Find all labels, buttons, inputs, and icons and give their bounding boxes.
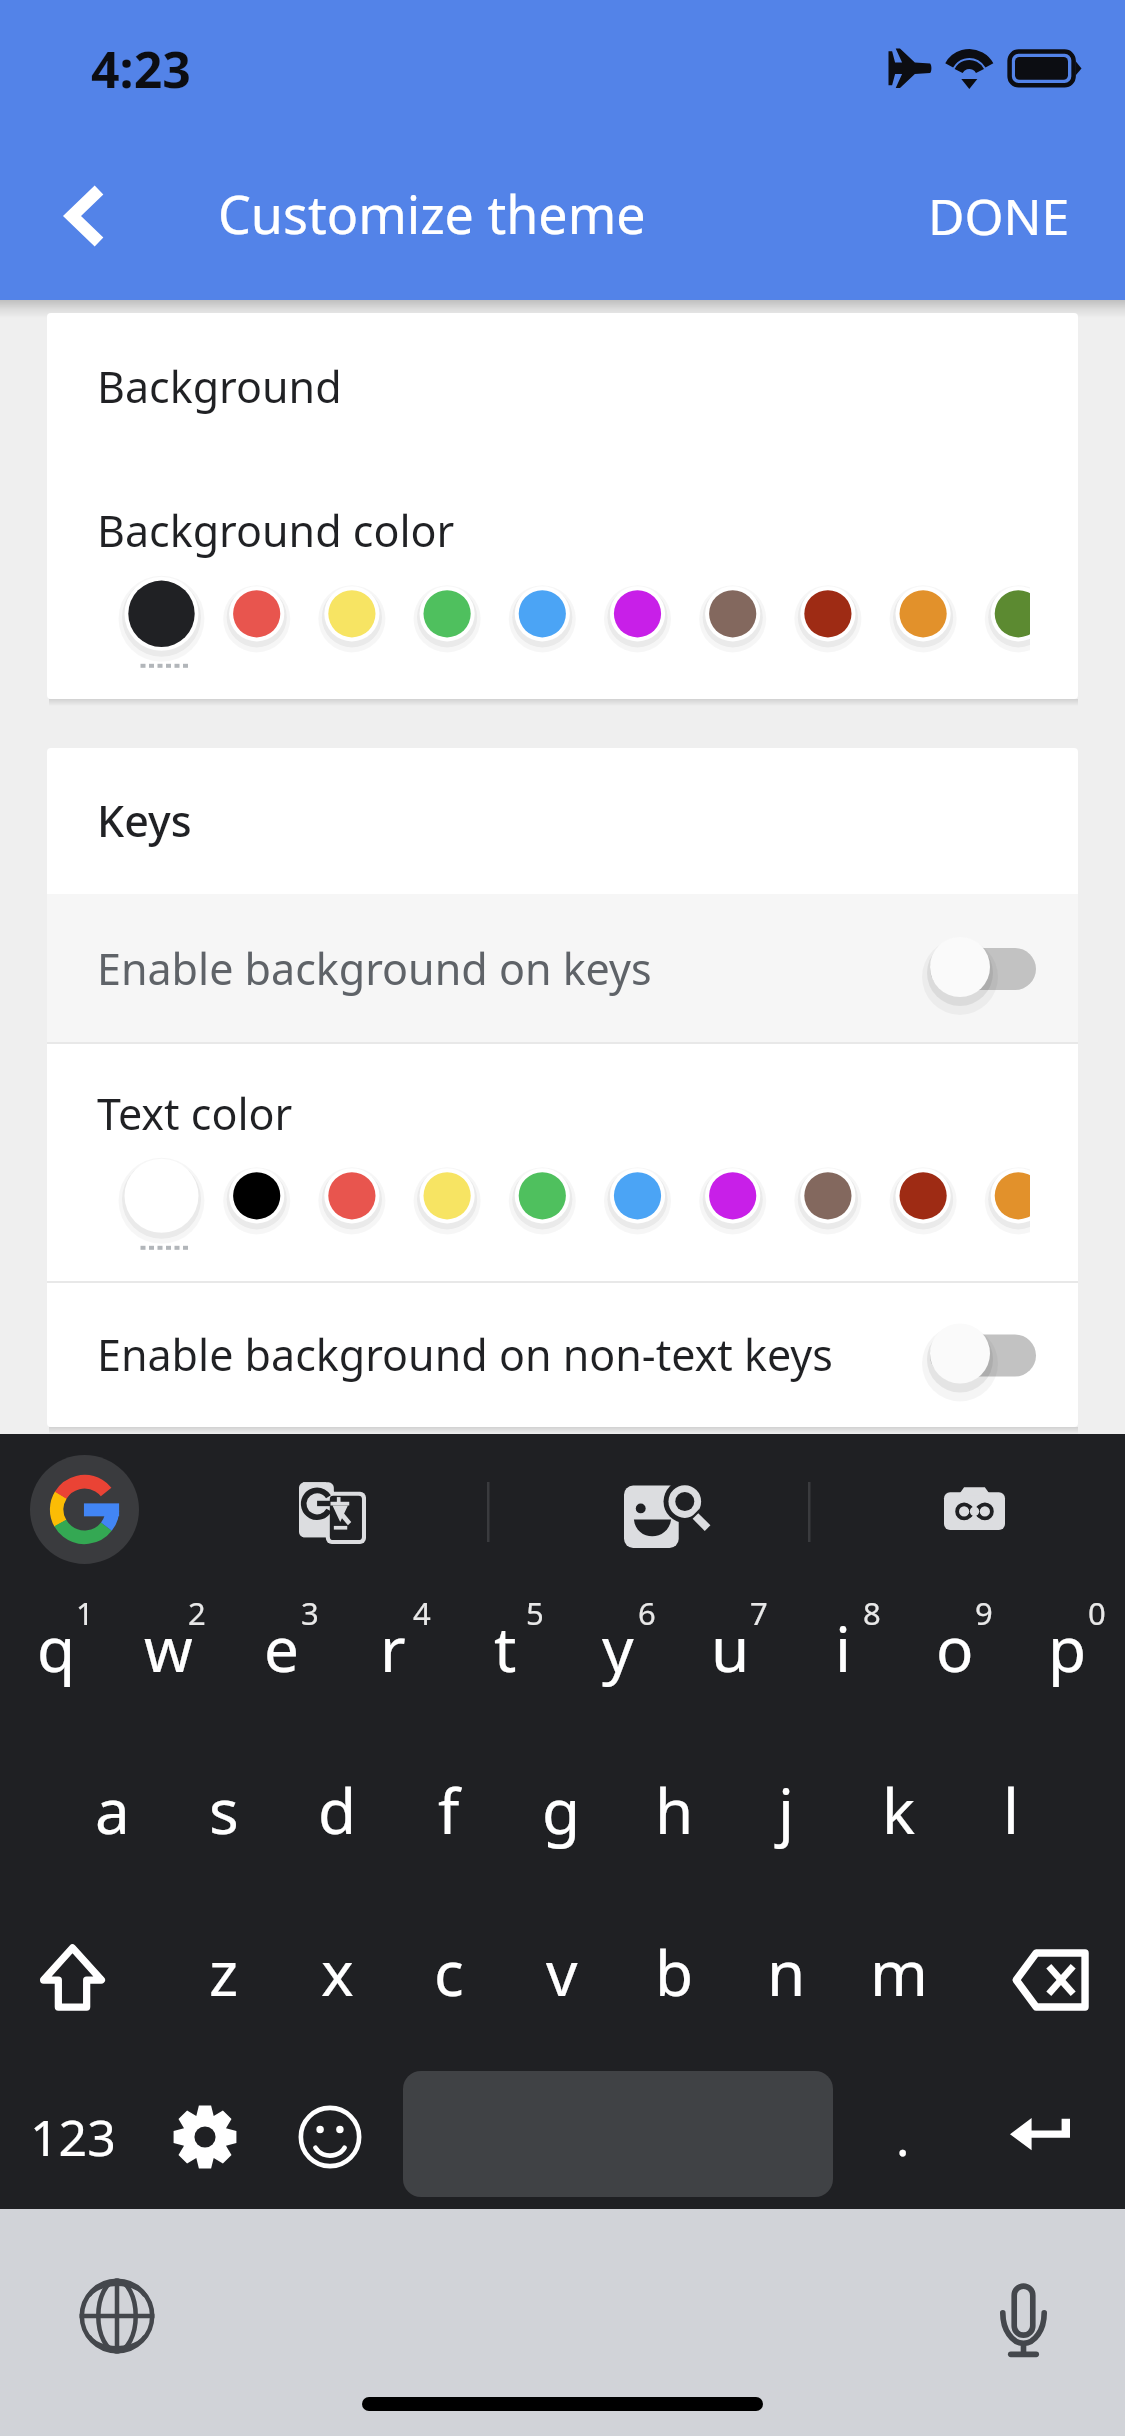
staticText: y	[602, 1606, 634, 1690]
staticText: 0	[1088, 1592, 1106, 1632]
button[interactable]: 123	[3, 2079, 143, 2194]
staticText: Background	[97, 357, 342, 416]
button[interactable]: Shift	[6, 1900, 138, 2063]
button[interactable]: a	[56, 1728, 168, 1891]
staticText: 3	[301, 1592, 319, 1632]
button[interactable]: b	[618, 1890, 730, 2053]
staticText: s	[209, 1768, 239, 1852]
staticText: 5	[526, 1592, 544, 1632]
staticText: j	[778, 1768, 794, 1852]
staticText: u	[711, 1606, 750, 1690]
button[interactable]: u	[674, 1566, 786, 1729]
button[interactable]: k	[843, 1728, 955, 1891]
button[interactable]: o	[899, 1566, 1011, 1729]
button[interactable]: Emoji	[275, 2079, 385, 2194]
staticText: i	[835, 1606, 851, 1690]
staticText: z	[209, 1930, 239, 2014]
staticText: p	[1048, 1606, 1087, 1690]
staticText: 2	[188, 1592, 206, 1632]
button[interactable]: w	[112, 1566, 224, 1729]
button[interactable]: y	[562, 1566, 674, 1729]
staticText: Enable background on keys	[97, 939, 928, 998]
button[interactable]: f	[393, 1728, 505, 1891]
button[interactable]: p	[1011, 1566, 1123, 1729]
staticText: h	[655, 1768, 694, 1852]
button[interactable]: n	[730, 1890, 842, 2053]
button[interactable]: i	[787, 1566, 899, 1729]
staticText: x	[321, 1930, 354, 2014]
staticText: w	[144, 1606, 193, 1690]
staticText: 4:23	[91, 35, 191, 103]
button[interactable]: GIF	[944, 1480, 1005, 1541]
button[interactable]: Translate	[299, 1477, 366, 1544]
button[interactable]: Voice input	[999, 2281, 1048, 2357]
button[interactable]: l	[955, 1728, 1067, 1891]
staticText: 123	[30, 2103, 116, 2171]
staticText: Customize theme	[218, 178, 646, 249]
button[interactable]: x	[281, 1890, 393, 2053]
button[interactable]: Sticker search	[624, 1478, 700, 1554]
button[interactable]: e	[225, 1566, 337, 1729]
staticText: 8	[863, 1592, 881, 1632]
button[interactable]: s	[168, 1728, 280, 1891]
button[interactable]: Settings	[150, 2079, 260, 2194]
button[interactable]: g	[505, 1728, 617, 1891]
staticText: 1	[76, 1592, 94, 1632]
staticText: 4	[413, 1592, 431, 1632]
staticText: f	[438, 1768, 460, 1852]
button[interactable]: Google search	[30, 1455, 139, 1564]
staticText: l	[1003, 1768, 1019, 1852]
button[interactable]: r	[337, 1566, 449, 1729]
button[interactable]: j	[730, 1728, 842, 1891]
staticText: d	[318, 1768, 357, 1852]
button[interactable]: c	[393, 1890, 505, 2053]
staticText: .	[896, 2103, 910, 2171]
button[interactable]: z	[168, 1890, 280, 2053]
staticText: o	[936, 1606, 974, 1690]
button[interactable]: q	[0, 1566, 112, 1729]
staticText: r	[380, 1606, 406, 1690]
staticText: b	[655, 1930, 694, 2014]
staticText: v	[546, 1930, 578, 2014]
button[interactable]: t	[449, 1566, 561, 1729]
button[interactable]: DONE	[900, 160, 1095, 270]
staticText: 6	[638, 1592, 656, 1632]
staticText: k	[882, 1768, 916, 1852]
button[interactable]: .	[850, 2079, 955, 2194]
button[interactable]: v	[506, 1890, 618, 2053]
staticText: q	[37, 1606, 76, 1690]
staticText: 7	[750, 1592, 768, 1632]
button[interactable]: Backspace	[985, 1900, 1117, 2063]
button[interactable]: Back	[16, 155, 136, 275]
staticText: g	[542, 1768, 581, 1852]
button[interactable]: Enter	[975, 2079, 1105, 2194]
staticText: Text color	[97, 1084, 293, 1143]
button[interactable]: Enable background on keys	[47, 894, 1078, 1042]
button[interactable]: h	[618, 1728, 730, 1891]
staticText: DONE	[928, 182, 1070, 250]
button[interactable]: Change keyboard language	[78, 2277, 156, 2355]
button[interactable]: m	[843, 1890, 955, 2053]
staticText: a	[95, 1768, 130, 1852]
staticText: t	[494, 1606, 517, 1690]
staticText: Enable background on non-text keys	[97, 1325, 928, 1384]
button[interactable]: Enable background on non-text keys	[47, 1282, 1078, 1427]
staticText: c	[434, 1930, 464, 2014]
staticText: Background color	[97, 501, 455, 560]
staticText: n	[767, 1930, 806, 2014]
staticText: e	[264, 1606, 299, 1690]
staticText: m	[870, 1930, 928, 2014]
staticText: 9	[975, 1592, 993, 1632]
staticText: Keys	[97, 791, 192, 850]
button[interactable]: d	[281, 1728, 393, 1891]
